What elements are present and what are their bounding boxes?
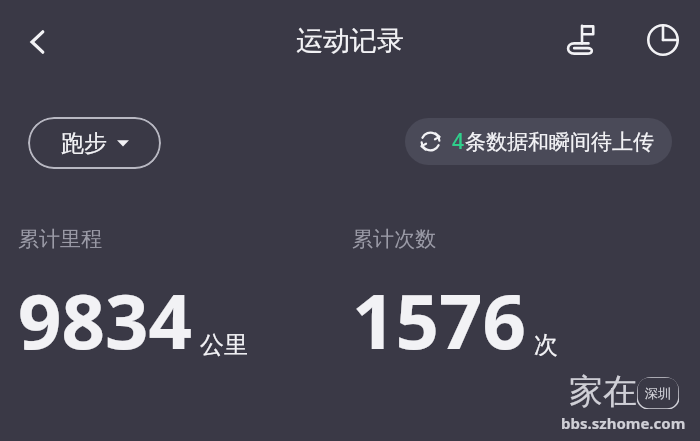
staticText: 1576 xyxy=(352,268,526,372)
staticText: 次 xyxy=(534,330,558,360)
button[interactable]: Routes xyxy=(556,15,606,65)
staticText: 跑步 xyxy=(61,129,107,158)
staticText: 条数据和瞬间待上传 xyxy=(465,129,654,155)
button[interactable]: Back xyxy=(12,16,64,68)
button[interactable]: 跑步 xyxy=(28,117,161,169)
staticText: 公里 xyxy=(200,330,248,360)
staticText: bbs.szhome.com xyxy=(561,413,686,433)
staticText: 运动记录 xyxy=(296,24,404,58)
staticText: 4 xyxy=(452,127,465,156)
staticText: 9834 xyxy=(18,268,192,372)
staticText: 家在 xyxy=(569,370,637,413)
button[interactable]: Statistics xyxy=(638,15,688,65)
button[interactable]: 累计里程 xyxy=(18,226,248,372)
staticText: 深圳 xyxy=(645,385,671,401)
button[interactable]: 4 xyxy=(405,118,672,165)
button[interactable]: 累计次数 xyxy=(352,226,558,372)
staticText: 累计次数 xyxy=(352,226,436,252)
staticText: 累计里程 xyxy=(18,226,102,252)
